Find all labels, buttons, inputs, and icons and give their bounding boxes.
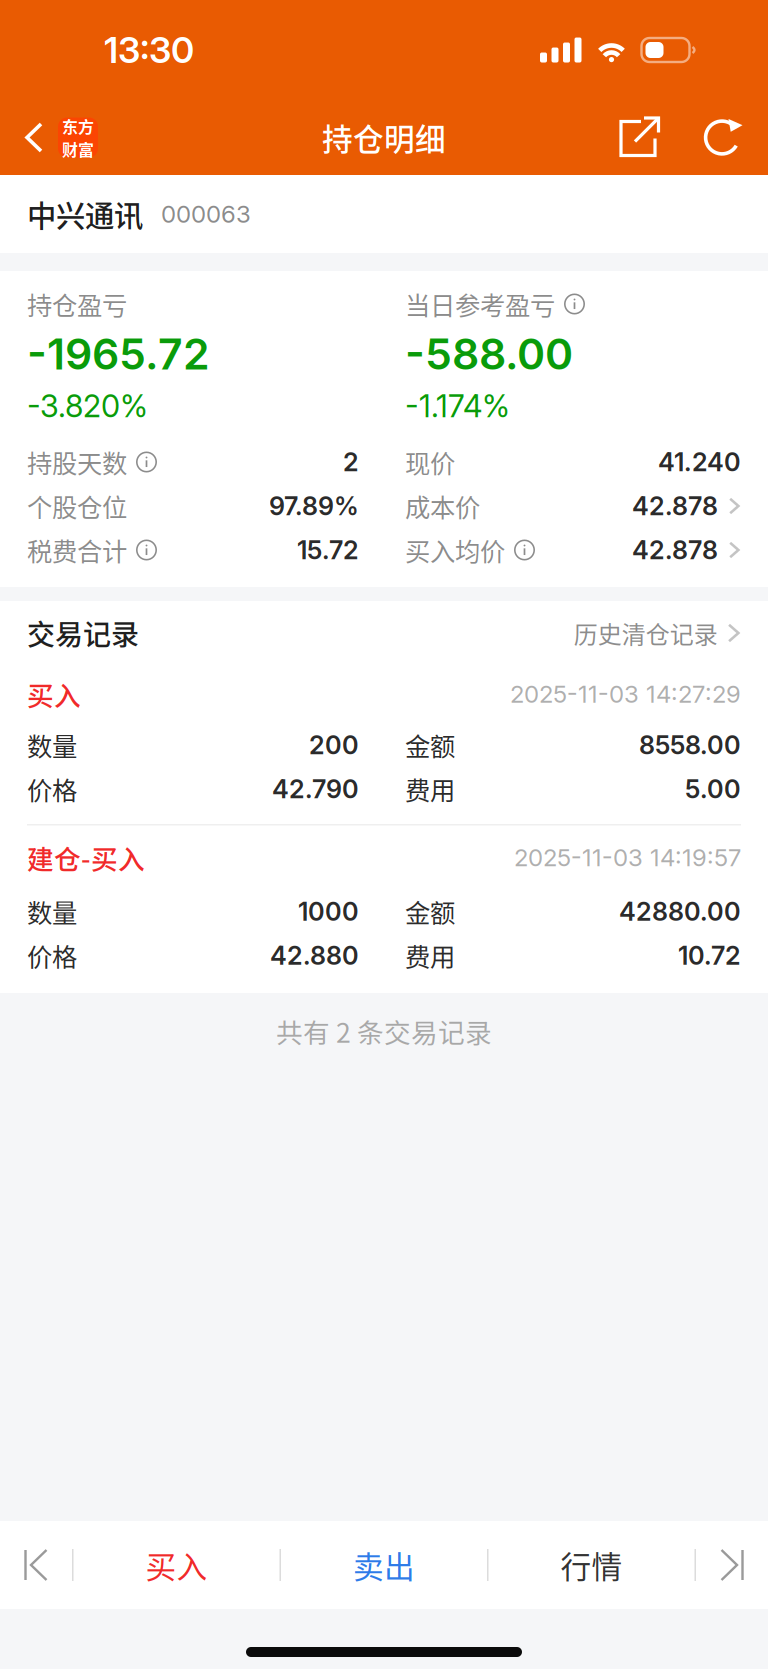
staticText: 42.878 [632,535,718,565]
staticText: 金额 [405,727,455,763]
staticText: 东方 [62,114,94,137]
staticText: 2025-11-03 14:27:29 [510,679,741,708]
button[interactable]: 返回东方财富 [0,100,112,174]
staticText: 价格 [27,937,77,974]
staticText: -588.00 [405,328,573,380]
staticText: 13:30 [104,28,194,72]
staticText: 买入 [27,675,81,713]
staticText: 共有 2 条交易记录 [276,1012,492,1050]
staticText: 行情 [560,1543,622,1587]
staticText: 成本价 [405,488,480,524]
staticText: 42.790 [272,774,359,804]
staticText: 个股仓位 [27,488,127,524]
staticText: 历史清仓记录 [574,616,718,650]
staticText: 41.240 [658,447,741,477]
staticText: 数量 [27,893,77,930]
button[interactable]: 分享 [590,100,690,174]
staticText: 持仓盈亏 [27,286,127,322]
staticText: 8558.00 [639,730,741,760]
staticText: 卖出 [353,1543,415,1587]
staticText: 1000 [298,896,359,927]
staticText: -1.174% [405,387,510,424]
staticText: 数量 [27,727,77,763]
staticText: 买入均价 [405,532,505,568]
staticText: 金额 [405,893,455,930]
staticText: 5.00 [685,774,741,804]
staticText: 费用 [405,771,455,807]
staticText: 200 [309,730,359,760]
staticText: 建仓-买入 [27,838,145,877]
staticText: 持股天数 [27,444,127,480]
staticText: 2025-11-03 14:19:57 [514,843,741,872]
staticText: 42.880 [270,940,359,971]
staticText: 持仓明细 [322,115,446,160]
staticText: 费用 [405,937,455,974]
button[interactable]: 成本价 [405,484,741,528]
staticText: -3.820% [27,387,148,424]
staticText: 97.89% [269,491,359,521]
staticText: 15.72 [297,535,359,565]
button[interactable]: 刷新 [690,100,756,174]
staticText: 10.72 [678,940,741,971]
staticText: 价格 [27,771,77,807]
staticText: 中兴通讯 [27,193,143,235]
staticText: 税费合计 [27,532,127,568]
staticText: 财富 [62,137,94,161]
staticText: 当日参考盈亏 [405,286,555,322]
button[interactable]: 历史清仓记录 [574,616,741,650]
button[interactable]: 买入 [73,1521,279,1609]
staticText: 42.878 [632,491,718,521]
staticText: 现价 [405,444,455,480]
button[interactable]: 卖出 [281,1521,487,1609]
staticText: 000063 [161,199,251,228]
staticText: -1965.72 [27,328,210,380]
button[interactable]: 下一只 [696,1521,768,1609]
button[interactable]: 上一只 [0,1521,72,1609]
staticText: 2 [343,447,359,477]
staticText: 买入 [145,1543,207,1587]
button[interactable]: 行情 [488,1521,694,1609]
staticText: 42880.00 [619,896,741,927]
button[interactable]: 买入均价 [405,528,741,572]
staticText: 交易记录 [27,613,139,653]
